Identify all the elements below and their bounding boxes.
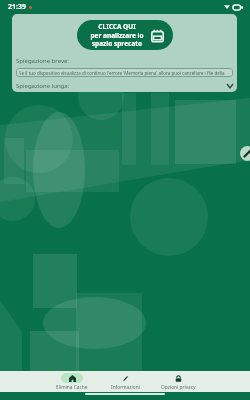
staticText: Spiegazione lunga: [16, 82, 70, 90]
staticText: Elimina Cache [56, 384, 88, 391]
staticText: 21:39 [8, 2, 26, 12]
button[interactable]: Modifica [240, 146, 250, 161]
button[interactable]: Opzioni privacy [152, 373, 204, 391]
staticText: Se il tuo dispositivo visualizza di cont… [19, 70, 233, 76]
button[interactable]: Se il tuo dispositivo visualizza di cont… [16, 68, 233, 77]
staticText: Spiegazione breve: [16, 57, 69, 65]
staticText: CLICCA QUI per analizzare lo spazio spre… [90, 22, 144, 48]
staticText: Informazioni [111, 384, 140, 391]
button[interactable]: Informazioni [99, 373, 151, 391]
staticText: Opzioni privacy [161, 384, 196, 391]
button[interactable]: Elimina Cache [46, 373, 98, 391]
button[interactable]: Spiegazione lunga: [16, 82, 233, 90]
button[interactable]: CLICCA QUI per analizzare lo spazio spre… [77, 20, 173, 50]
